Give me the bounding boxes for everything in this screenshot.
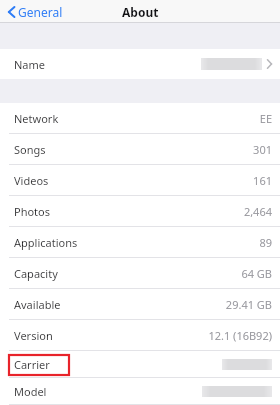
button[interactable]: Name: [0, 49, 280, 79]
button[interactable]: Photos: [0, 196, 280, 227]
other: Open name: [267, 59, 272, 69]
staticText: About: [122, 4, 159, 20]
button[interactable]: General: [6, 2, 65, 22]
button[interactable]: Available: [0, 289, 280, 320]
staticText: Network: [14, 111, 59, 126]
staticText: EE: [259, 111, 272, 126]
staticText: Songs: [14, 142, 46, 157]
button[interactable]: Model: [0, 378, 280, 405]
staticText: Videos: [14, 173, 49, 188]
staticText: Version: [14, 328, 53, 343]
staticText: Carrier: [14, 357, 50, 372]
staticText: 2,464: [243, 204, 272, 219]
staticText: 161: [253, 173, 272, 188]
staticText: 29.41 GB: [225, 297, 272, 312]
staticText: Name: [14, 57, 46, 72]
staticText: 64 GB: [241, 266, 272, 281]
button[interactable]: Carrier: [0, 351, 280, 378]
button[interactable]: Songs: [0, 134, 280, 165]
staticText: General: [18, 4, 63, 20]
staticText: 301: [253, 142, 272, 157]
staticText: 12.1 (16B92): [208, 328, 272, 343]
staticText: Photos: [14, 204, 51, 219]
staticText: Model: [14, 384, 47, 399]
staticText: Capacity: [14, 266, 58, 281]
button[interactable]: Videos: [0, 165, 280, 196]
staticText: 89: [259, 235, 272, 250]
staticText: Available: [14, 297, 61, 312]
button[interactable]: Capacity: [0, 258, 280, 289]
button[interactable]: Applications: [0, 227, 280, 258]
button[interactable]: Version: [0, 320, 280, 351]
staticText: Applications: [14, 235, 78, 250]
button[interactable]: Network: [0, 103, 280, 134]
